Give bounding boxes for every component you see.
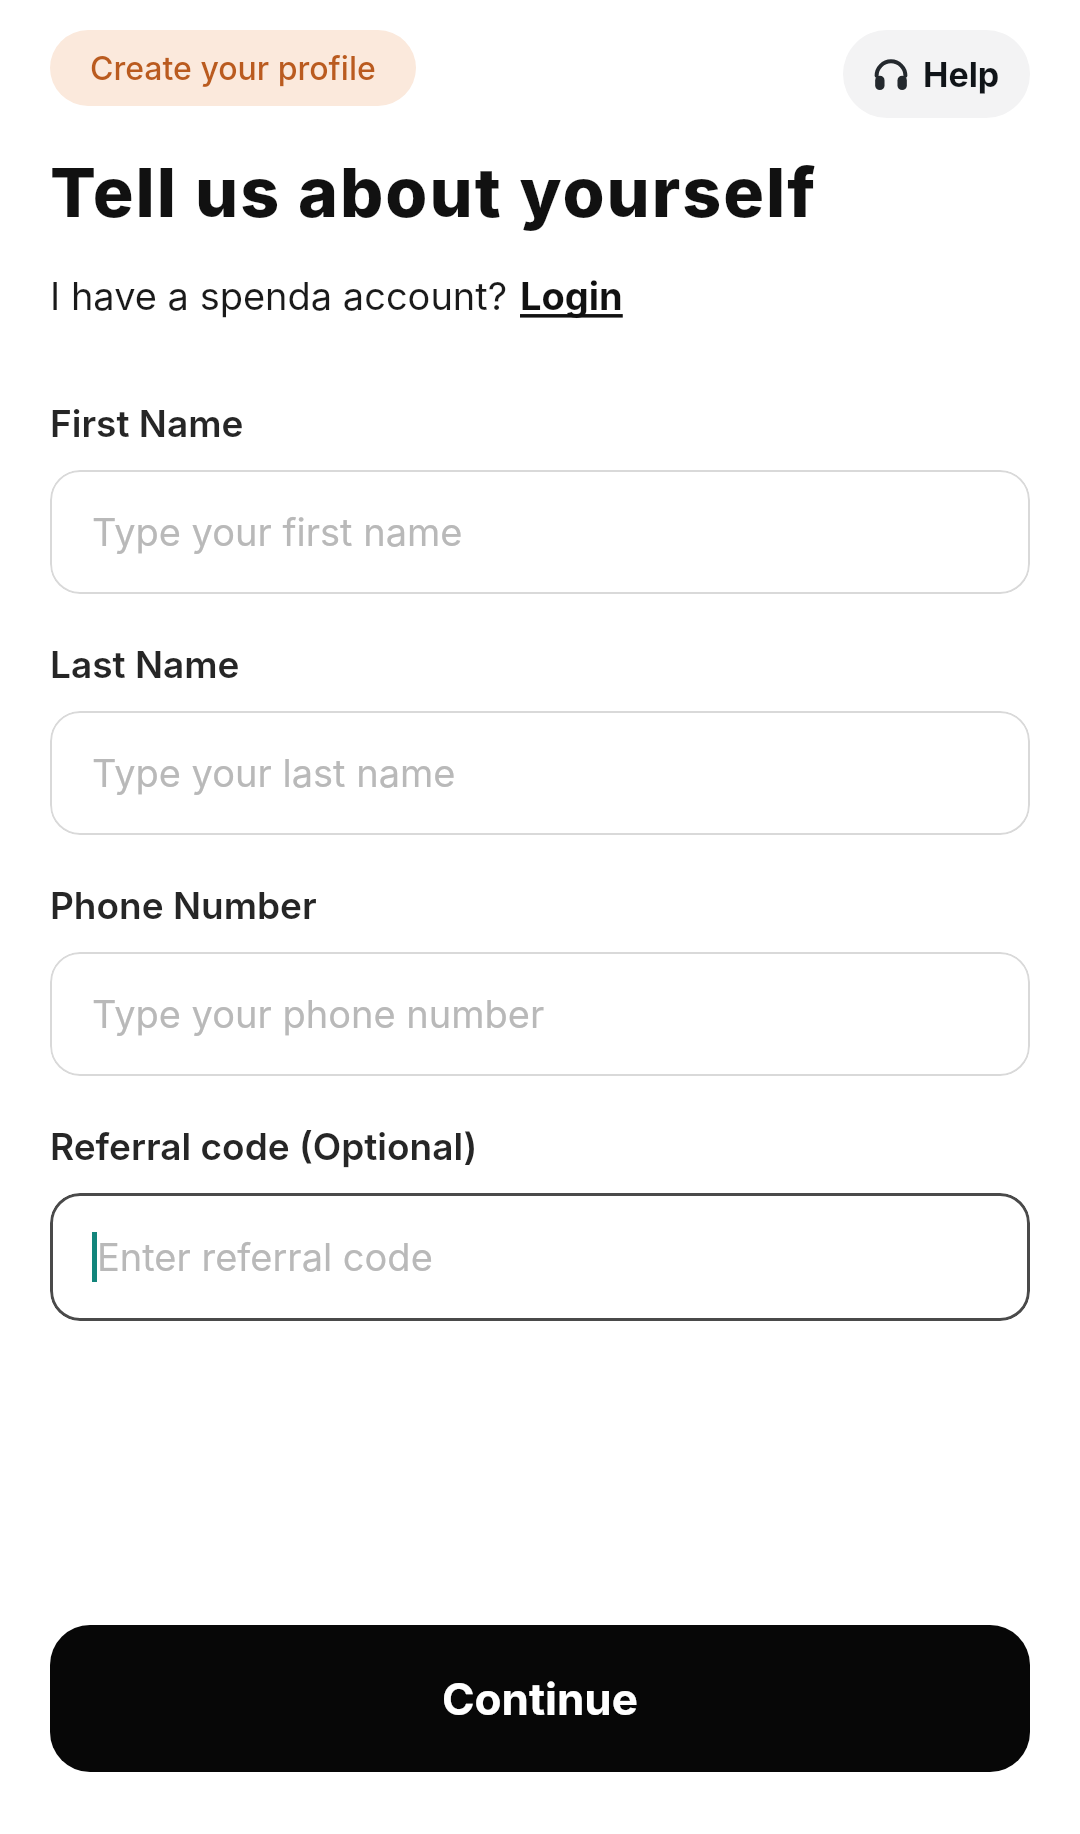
- staticText: Enter referral code: [97, 1234, 433, 1280]
- staticText: Help: [923, 54, 1000, 95]
- staticText: Phone Number: [50, 883, 317, 928]
- staticText: Last Name: [50, 642, 240, 687]
- button[interactable]: Continue: [50, 1625, 1030, 1772]
- staticText: Continue: [442, 1672, 638, 1725]
- button[interactable]: Help: [843, 30, 1030, 118]
- staticText: Referral code (Optional): [50, 1124, 478, 1169]
- button[interactable]: Create your profile: [50, 30, 416, 106]
- button[interactable]: Type your phone number: [50, 952, 1030, 1076]
- button[interactable]: Enter referral code: [50, 1193, 1030, 1321]
- button[interactable]: Type your last name: [50, 711, 1030, 835]
- staticText: Create your profile: [90, 49, 376, 88]
- staticText: Type your last name: [92, 750, 456, 796]
- button[interactable]: Login: [520, 273, 623, 319]
- staticText: Tell us about yourself: [50, 151, 818, 233]
- staticText: Type your first name: [92, 509, 463, 555]
- staticText: Type your phone number: [92, 991, 545, 1037]
- staticText: I have a spenda account?: [50, 273, 508, 319]
- staticText: First Name: [50, 401, 244, 446]
- button[interactable]: Type your first name: [50, 470, 1030, 594]
